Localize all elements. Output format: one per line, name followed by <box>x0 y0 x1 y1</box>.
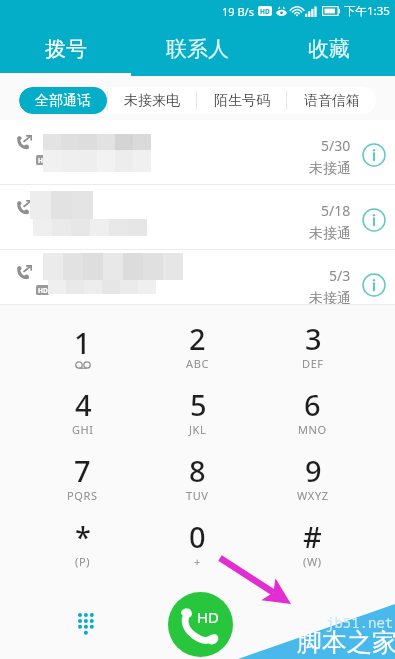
staticText: 3 <box>305 319 322 358</box>
staticText: HD <box>197 607 220 627</box>
button[interactable]: 9 <box>255 445 370 511</box>
button[interactable]: 全部通话 <box>19 87 107 114</box>
button[interactable]: 4 <box>25 379 140 445</box>
staticText: TUV <box>186 488 209 503</box>
staticText: 脚本之家 <box>297 627 395 658</box>
button[interactable]: Call <box>168 592 233 657</box>
staticText: jb51.net <box>326 613 394 632</box>
staticText: 收藏 <box>308 36 350 62</box>
staticText: 5/3 <box>329 266 351 285</box>
staticText: (W) <box>303 554 322 569</box>
button[interactable]: 未接来电 <box>108 87 196 114</box>
staticText: * <box>75 517 91 556</box>
button[interactable]: 1 <box>25 313 140 379</box>
staticText: (P) <box>75 554 91 569</box>
staticText: 未接通 <box>309 225 351 243</box>
staticText: PQRS <box>67 488 98 503</box>
staticText: 下午1:35 <box>344 3 390 19</box>
staticText: 5/18 <box>321 201 351 220</box>
staticText: 5 <box>190 385 207 424</box>
button[interactable]: 联系人 <box>131 22 263 76</box>
staticText: HD <box>38 156 48 165</box>
staticText: # <box>303 517 322 556</box>
staticText: JKL <box>189 422 207 437</box>
staticText: 7 <box>74 451 91 490</box>
staticText: 语音信箱 <box>304 92 360 110</box>
staticText: HD <box>260 7 270 16</box>
staticText: 8 <box>189 451 206 490</box>
button[interactable]: 5/18 <box>0 185 395 250</box>
button[interactable]: 3 <box>255 313 370 379</box>
staticText: 未接来电 <box>124 92 180 110</box>
button[interactable]: 7 <box>25 445 140 511</box>
button[interactable]: 2 <box>140 313 255 379</box>
staticText: GHI <box>72 422 94 437</box>
button[interactable]: 6 <box>255 379 370 445</box>
button[interactable]: 拨号 <box>0 22 131 76</box>
button[interactable]: Details <box>357 138 391 172</box>
button[interactable]: Details <box>357 268 391 302</box>
staticText: + <box>194 554 201 569</box>
staticText: HD <box>38 286 48 295</box>
staticText: 未接通 <box>309 290 351 308</box>
button[interactable]: 陌生号码 <box>197 87 286 114</box>
staticText: 拨号 <box>45 36 87 62</box>
staticText: 9 <box>305 451 322 490</box>
staticText: 4 <box>75 385 92 424</box>
staticText: 2 <box>189 319 206 358</box>
button[interactable]: 语音信箱 <box>287 87 376 114</box>
staticText: 全部通话 <box>35 92 91 110</box>
staticText: 6 <box>304 385 321 424</box>
staticText: MNO <box>298 422 327 437</box>
staticText: DEF <box>302 356 324 371</box>
button[interactable]: 收藏 <box>263 22 395 76</box>
button[interactable]: 5 <box>140 379 255 445</box>
button[interactable]: HD <box>0 120 395 185</box>
staticText: 0 <box>189 517 206 556</box>
staticText: 陌生号码 <box>214 92 270 110</box>
staticText: 1 <box>74 323 91 362</box>
button[interactable]: Keypad <box>63 601 107 645</box>
button[interactable]: # <box>255 511 370 577</box>
button[interactable]: 8 <box>140 445 255 511</box>
button[interactable]: * <box>25 511 140 577</box>
button[interactable]: 0 <box>140 511 255 577</box>
button[interactable]: HD <box>0 250 395 305</box>
staticText: WXYZ <box>297 488 329 503</box>
staticText: ABC <box>186 356 209 371</box>
staticText: 联系人 <box>166 36 229 62</box>
staticText: 5/30 <box>321 136 351 155</box>
button[interactable]: Details <box>357 203 391 237</box>
staticText: 19 B/s <box>222 4 254 19</box>
staticText: 未接通 <box>309 160 351 178</box>
